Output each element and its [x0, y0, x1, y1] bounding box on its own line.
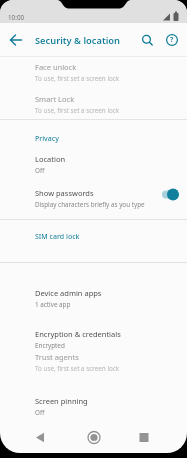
staticText: To use, first set a screen lock — [35, 364, 120, 373]
button[interactable] — [6, 30, 26, 50]
staticText: Face unlock — [35, 62, 77, 72]
button[interactable]: Trust agents — [0, 352, 187, 378]
staticText: SIM card lock — [35, 232, 80, 242]
button[interactable]: Location — [0, 154, 187, 180]
staticText: Encryption & credentials — [35, 329, 121, 339]
staticText: Device admin apps — [35, 288, 102, 298]
staticText: Security & location — [35, 34, 120, 47]
staticText: Off — [35, 408, 45, 417]
staticText: 10:00 — [8, 13, 25, 22]
staticText: Off — [35, 166, 45, 175]
button[interactable]: ? — [163, 31, 181, 49]
staticText: 1 active app — [35, 300, 71, 309]
button[interactable] — [28, 426, 52, 448]
button[interactable]: Screen pinning — [0, 396, 187, 422]
button[interactable] — [82, 426, 106, 448]
staticText: Location — [35, 154, 66, 164]
staticText: Screen pinning — [35, 396, 88, 406]
staticText: Show passwords — [35, 188, 94, 198]
button[interactable]: Face unlock — [0, 62, 187, 88]
button[interactable]: Device admin apps — [0, 288, 187, 314]
button[interactable] — [159, 188, 181, 201]
button[interactable]: Encryption & credentials — [0, 329, 187, 355]
staticText: Encrypted — [35, 341, 65, 350]
staticText: To use, first set a screen lock — [35, 74, 120, 83]
staticText: To use, first set a screen lock — [35, 106, 120, 115]
staticText: Display characters briefly as you type — [35, 200, 145, 209]
staticText: ? — [170, 35, 174, 45]
button[interactable] — [132, 426, 156, 448]
button[interactable] — [139, 32, 156, 49]
staticText: Trust agents — [35, 352, 79, 362]
staticText: Smart Lock — [35, 94, 75, 104]
staticText: Privacy — [35, 134, 59, 144]
button[interactable]: Show passwords — [0, 188, 187, 214]
button[interactable]: Smart Lock — [0, 94, 187, 120]
